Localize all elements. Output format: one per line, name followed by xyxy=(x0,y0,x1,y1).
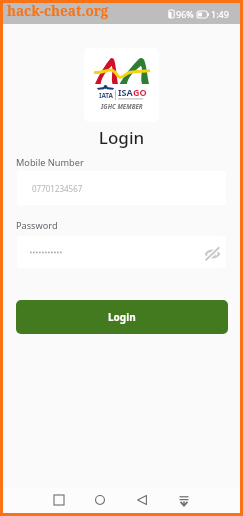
button[interactable]: Toggle password visibility xyxy=(17,236,226,268)
staticText: 96% xyxy=(176,8,194,20)
staticText: Login xyxy=(108,310,136,324)
staticText: Mobile Number xyxy=(16,156,84,169)
staticText: IATA xyxy=(99,91,113,100)
staticText: GO xyxy=(133,86,147,98)
button[interactable]: Back xyxy=(131,487,153,513)
staticText: ISA xyxy=(118,86,133,98)
staticText: hack-cheat.org xyxy=(7,2,109,20)
button[interactable]: Login xyxy=(16,300,228,334)
staticText: 1:49 xyxy=(211,8,229,20)
button[interactable]: Home xyxy=(89,487,111,513)
button[interactable]: Recents xyxy=(48,487,70,513)
staticText: 07701234567 xyxy=(32,183,83,194)
button[interactable]: Hide keyboard xyxy=(173,487,195,513)
staticText: IGHC MEMBER xyxy=(101,102,143,110)
staticText: Login xyxy=(3,126,240,149)
staticText: Password xyxy=(16,219,58,232)
button[interactable]: Toggle password visibility xyxy=(202,243,222,263)
button[interactable]: 07701234567 xyxy=(17,171,226,205)
